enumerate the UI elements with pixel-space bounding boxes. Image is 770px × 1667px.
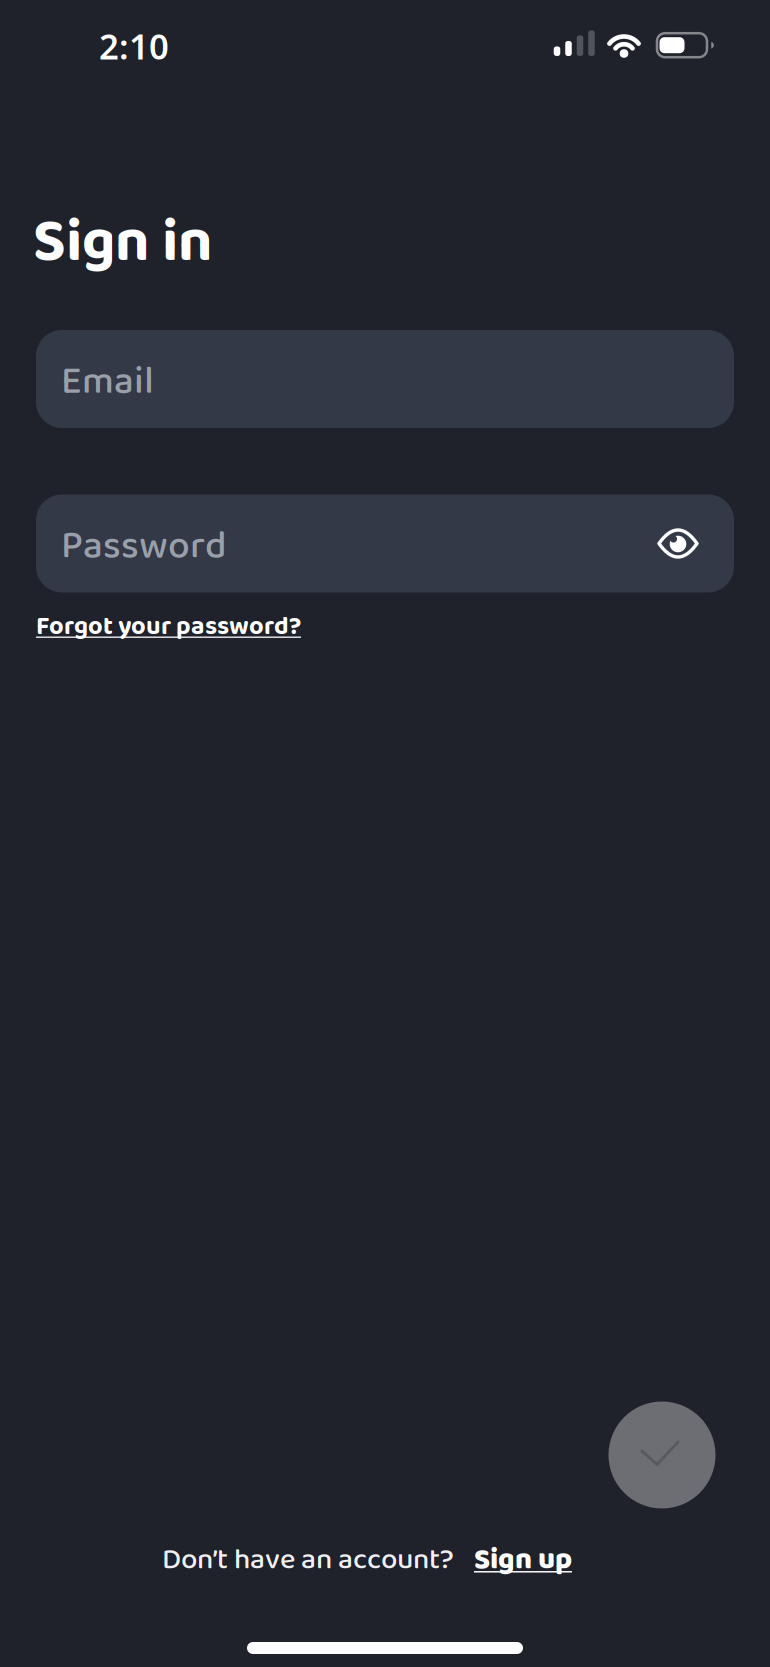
staticText: Forgot your password? <box>36 607 301 647</box>
button[interactable]: Sign in <box>608 1401 715 1508</box>
staticText: Sign up <box>474 1536 572 1583</box>
button[interactable]: Forgot your password? <box>36 607 301 647</box>
button[interactable]: Password <box>36 494 734 592</box>
staticText: Email <box>61 351 154 413</box>
staticText: Sign in <box>33 195 213 291</box>
button[interactable]: Email <box>36 330 734 428</box>
button[interactable]: Show password <box>650 515 706 571</box>
staticText: Don’t have an account? <box>162 1536 454 1583</box>
staticText: Password <box>61 515 227 577</box>
button[interactable]: Sign up <box>474 1536 572 1583</box>
staticText: 2:10 <box>99 22 169 70</box>
